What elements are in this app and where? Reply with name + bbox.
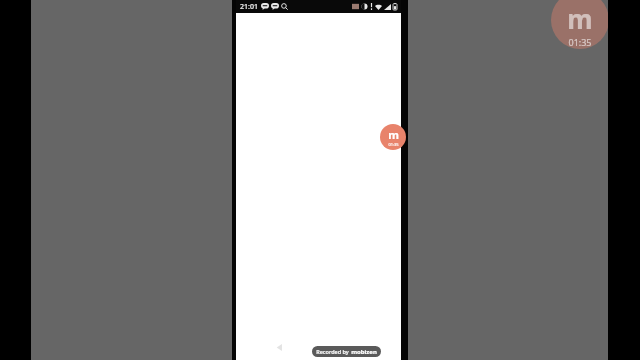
staticText: 01:35 (568, 36, 592, 48)
staticText: m (567, 1, 593, 36)
button[interactable]: Back (272, 340, 286, 354)
button[interactable]: Mobizen recorder (380, 124, 406, 150)
button[interactable]: Recorded by (316, 346, 377, 357)
staticText: m (388, 127, 399, 142)
staticText: 01:35 (388, 142, 399, 147)
staticText: 21:01 (240, 2, 258, 12)
staticText: mobizen (351, 348, 377, 356)
staticText: Recorded by (316, 348, 349, 355)
